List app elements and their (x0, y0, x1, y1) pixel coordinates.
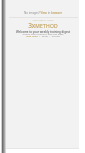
staticText: a quick look at what is new this week (6, 32, 80, 35)
staticText: 3xMETHOD (6, 21, 80, 30)
staticText: read more | share | archive (6, 34, 80, 37)
staticText: No images? View in browser (6, 11, 80, 15)
staticText: THE WEEKLY NEWS (6, 19, 80, 22)
staticText: Welcome to your weekly training digest (6, 30, 80, 34)
